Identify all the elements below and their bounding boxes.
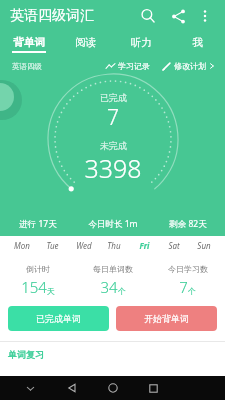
- staticText: 未完成: [100, 140, 127, 151]
- button[interactable]: 已完成单词: [8, 306, 109, 331]
- button[interactable]: 背单词: [0, 32, 57, 56]
- staticText: 英语四级: [12, 62, 42, 71]
- staticText: 倒计时: [26, 264, 50, 274]
- staticText: 英语四级词汇: [10, 7, 94, 25]
- staticText: 已完成: [100, 92, 127, 103]
- staticText: 已完成单词: [36, 313, 81, 324]
- staticText: Tue: [46, 240, 59, 251]
- staticText: 154: [21, 277, 47, 297]
- staticText: 个: [118, 286, 126, 296]
- button[interactable]: Share: [165, 3, 191, 29]
- staticText: 今日时长 1m: [88, 218, 138, 230]
- staticText: 剩余 82天: [169, 218, 207, 230]
- staticText: 7: [179, 277, 188, 297]
- staticText: Thu: [107, 240, 121, 251]
- staticText: 3398: [84, 151, 142, 185]
- button[interactable]: Home: [92, 376, 133, 400]
- button[interactable]: 学习记录: [104, 61, 152, 71]
- staticText: 7: [107, 103, 119, 132]
- staticText: Mon: [14, 240, 30, 251]
- staticText: 听力: [131, 36, 152, 49]
- staticText: Sat: [168, 240, 180, 251]
- staticText: 开始背单词: [144, 313, 189, 324]
- staticText: Wed: [76, 240, 92, 251]
- staticText: 背单词: [13, 36, 45, 49]
- staticText: Fri: [139, 240, 150, 251]
- staticText: 每日单词数: [93, 264, 133, 274]
- button[interactable]: 开始背单词: [116, 306, 217, 331]
- staticText: 我: [192, 36, 203, 49]
- button[interactable]: Recent apps: [133, 376, 174, 400]
- staticText: 修改计划: [174, 61, 206, 71]
- staticText: 今日学习数: [168, 264, 208, 274]
- button[interactable]: Back: [51, 376, 92, 400]
- staticText: 个: [188, 286, 196, 296]
- staticText: 学习记录: [118, 61, 150, 71]
- button[interactable]: More options: [193, 4, 217, 28]
- staticText: 单词复习: [8, 349, 44, 360]
- staticText: 进行 17天: [19, 218, 57, 230]
- button[interactable]: 我: [169, 32, 225, 56]
- button[interactable]: 修改计划: [160, 61, 217, 71]
- button[interactable]: Hide keyboard: [10, 376, 51, 400]
- staticText: 天: [47, 286, 55, 296]
- button[interactable]: 阅读: [57, 32, 113, 56]
- staticText: Sun: [197, 240, 211, 251]
- button[interactable]: 听力: [113, 32, 169, 56]
- staticText: 阅读: [75, 36, 96, 49]
- staticText: 34: [100, 277, 118, 297]
- button[interactable]: Search: [135, 3, 161, 29]
